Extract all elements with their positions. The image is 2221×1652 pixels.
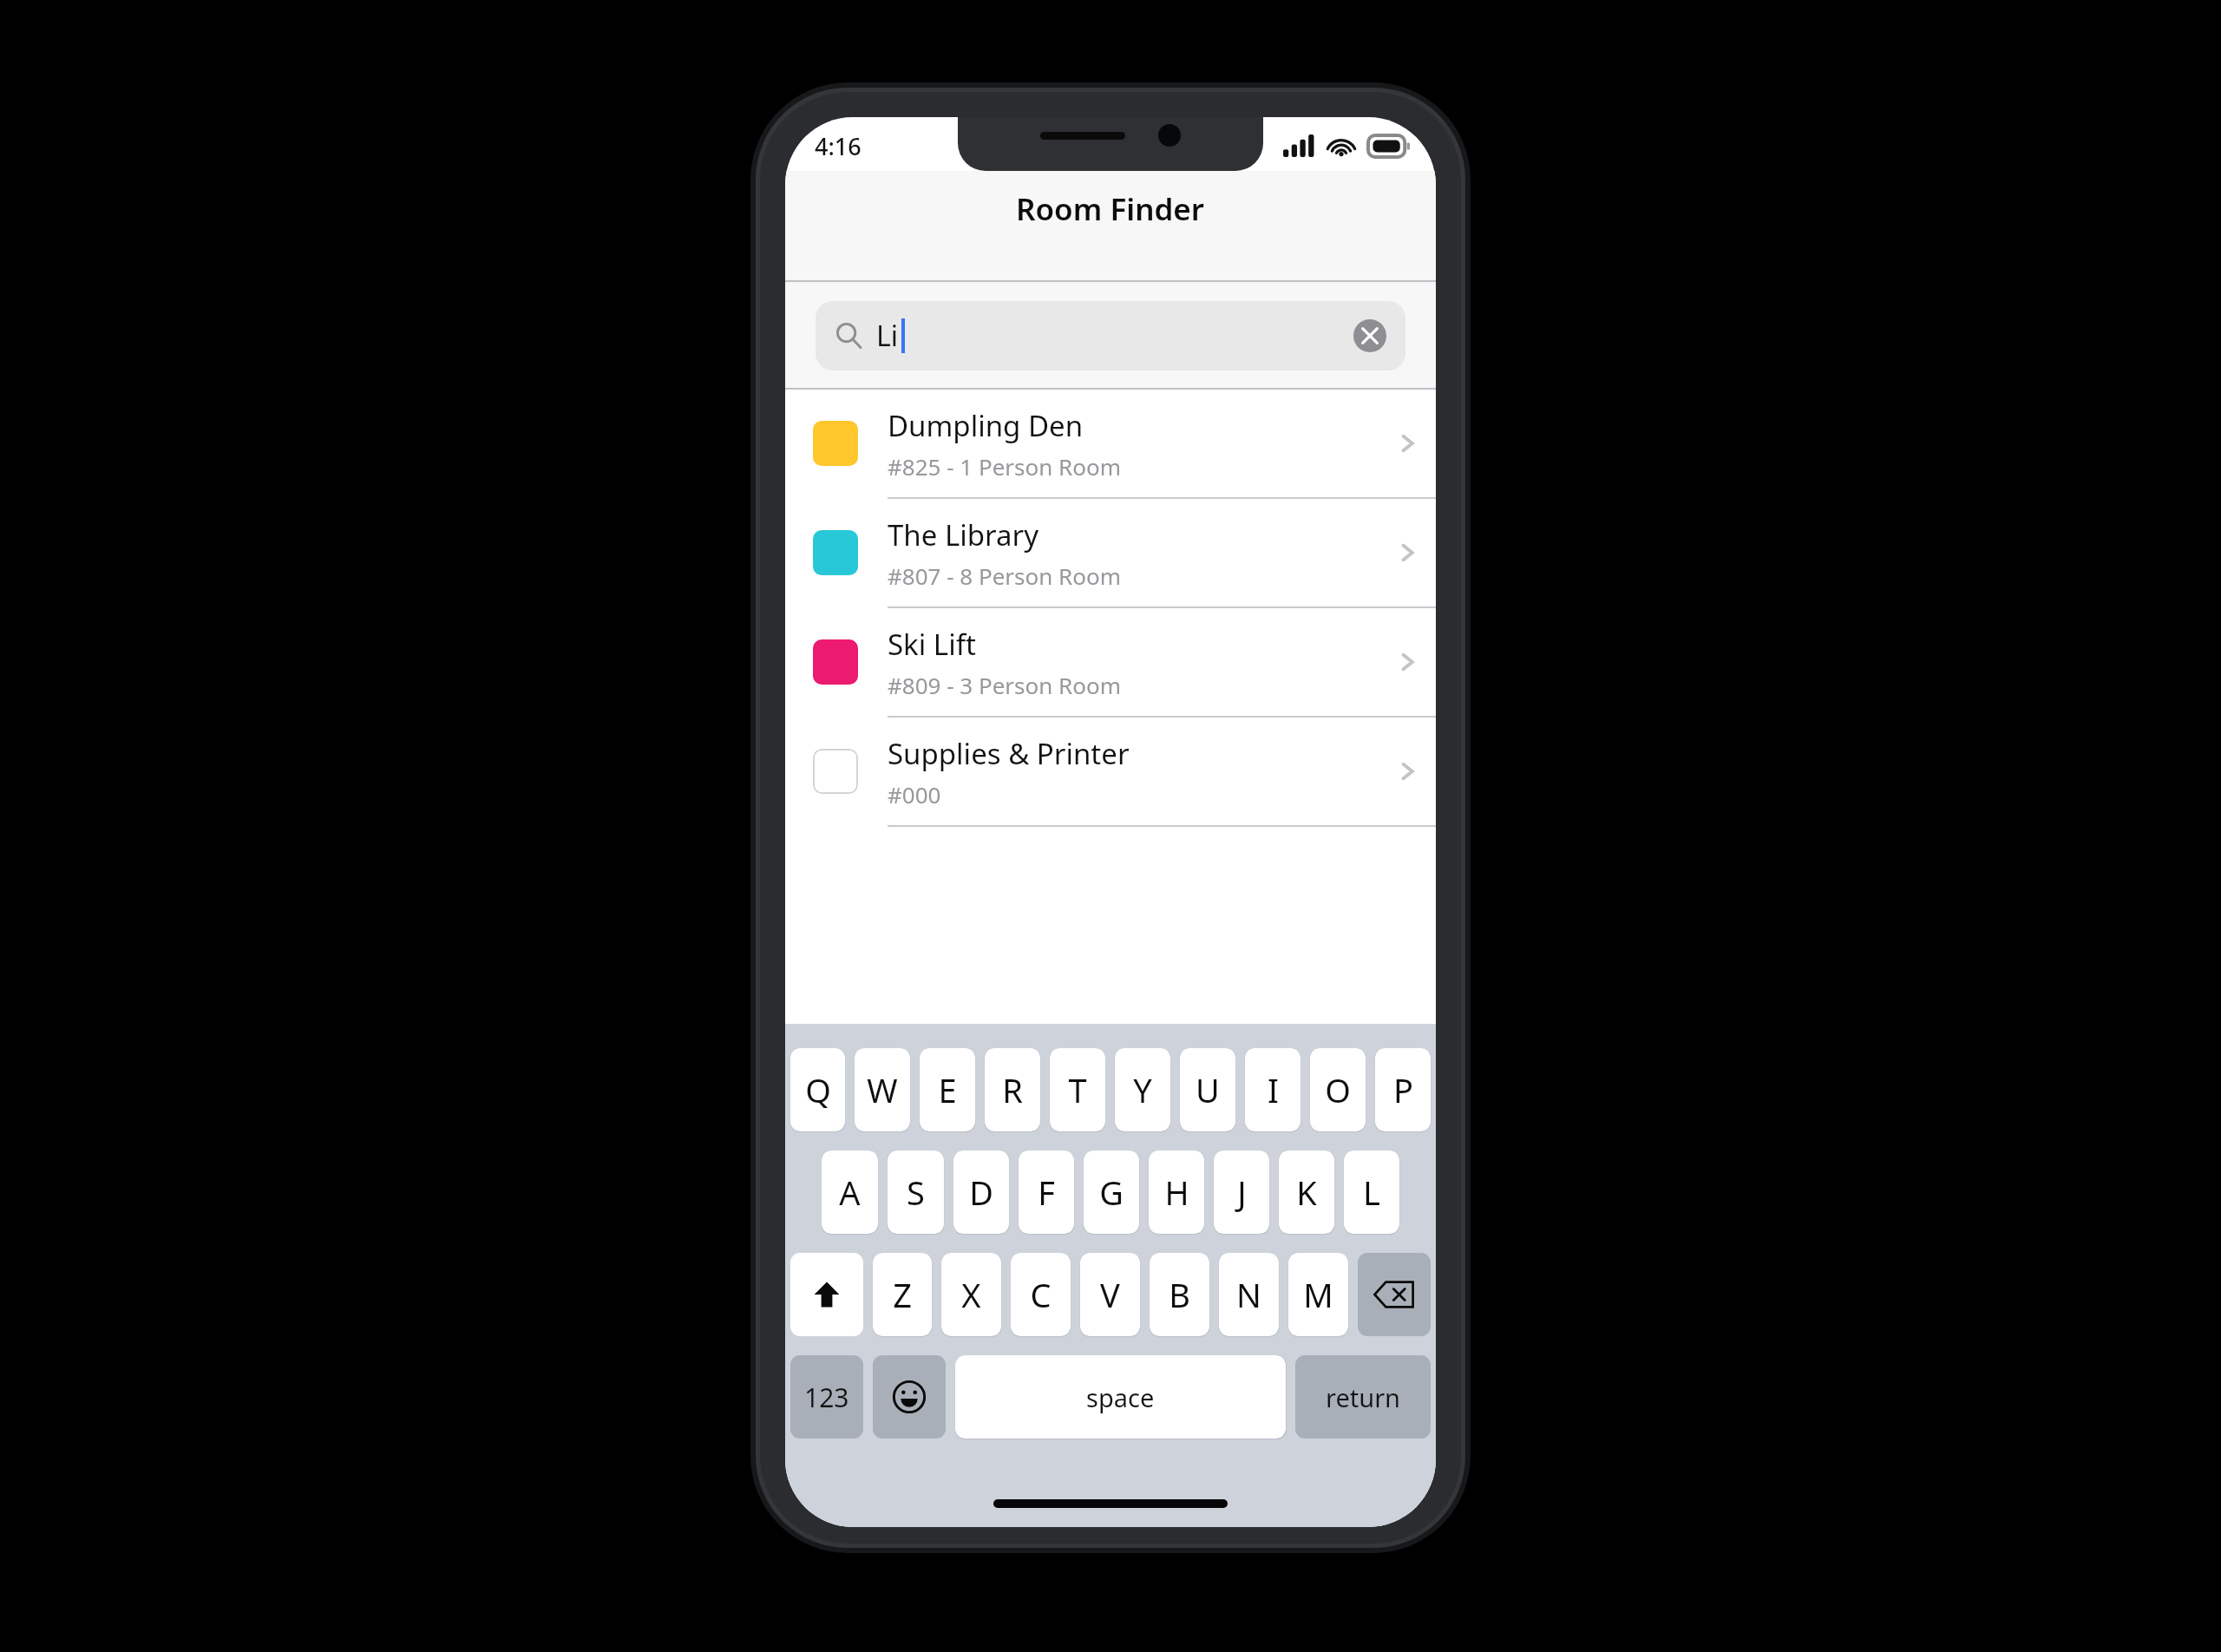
button[interactable]: V bbox=[1080, 1253, 1140, 1336]
button[interactable]: G bbox=[1084, 1150, 1139, 1234]
staticText: W bbox=[867, 1067, 898, 1112]
button[interactable]: B bbox=[1150, 1253, 1209, 1336]
staticText: M bbox=[1303, 1272, 1333, 1317]
staticText: L bbox=[1363, 1170, 1380, 1215]
staticText: #000 bbox=[888, 779, 941, 810]
button[interactable]: Backspace bbox=[1358, 1253, 1431, 1336]
staticText: T bbox=[1068, 1067, 1087, 1112]
button[interactable]: Emoji bbox=[873, 1355, 946, 1439]
button[interactable]: D bbox=[953, 1150, 1009, 1234]
staticText: F bbox=[1038, 1170, 1055, 1215]
staticText: V bbox=[1100, 1272, 1120, 1317]
button[interactable]: R bbox=[985, 1048, 1040, 1131]
button[interactable]: N bbox=[1219, 1253, 1279, 1336]
button[interactable]: W bbox=[855, 1048, 910, 1131]
staticText: The Library bbox=[888, 515, 1038, 554]
staticText: A bbox=[839, 1170, 861, 1215]
staticText: Li bbox=[876, 317, 899, 355]
button[interactable]: E bbox=[920, 1048, 975, 1131]
staticText: S bbox=[907, 1170, 925, 1215]
staticText: E bbox=[938, 1067, 957, 1112]
staticText: K bbox=[1296, 1170, 1317, 1215]
staticText: Room Finder bbox=[1016, 188, 1205, 230]
staticText: B bbox=[1169, 1272, 1190, 1317]
staticText: O bbox=[1325, 1067, 1351, 1112]
staticText: Y bbox=[1133, 1067, 1152, 1112]
button[interactable]: I bbox=[1245, 1048, 1300, 1131]
button[interactable]: O bbox=[1310, 1048, 1366, 1131]
button[interactable]: U bbox=[1180, 1048, 1235, 1131]
staticText: Ski Lift bbox=[888, 625, 976, 664]
button[interactable]: F bbox=[1019, 1150, 1074, 1234]
staticText: J bbox=[1237, 1170, 1247, 1215]
button[interactable]: Q bbox=[790, 1048, 845, 1131]
button[interactable]: C bbox=[1011, 1253, 1071, 1336]
button[interactable]: A bbox=[822, 1150, 878, 1234]
staticText: C bbox=[1030, 1272, 1052, 1317]
staticText: Supplies & Printer bbox=[888, 734, 1130, 773]
button[interactable]: Ski Lift bbox=[785, 608, 1436, 716]
button[interactable]: The Library bbox=[785, 499, 1436, 606]
staticText: 4:16 bbox=[815, 130, 862, 162]
button[interactable]: space bbox=[955, 1355, 1286, 1439]
button[interactable]: M bbox=[1288, 1253, 1348, 1336]
staticText: 123 bbox=[804, 1380, 849, 1415]
button[interactable]: Dumpling Den bbox=[785, 390, 1436, 497]
button[interactable]: H bbox=[1149, 1150, 1204, 1234]
staticText: Q bbox=[805, 1067, 831, 1112]
button[interactable]: 123 bbox=[790, 1355, 863, 1439]
staticText: X bbox=[961, 1272, 981, 1317]
staticText: N bbox=[1236, 1272, 1261, 1317]
staticText: #807 - 8 Person Room bbox=[888, 560, 1122, 591]
button[interactable]: X bbox=[941, 1253, 1001, 1336]
button[interactable]: J bbox=[1214, 1150, 1269, 1234]
staticText: D bbox=[969, 1170, 993, 1215]
button[interactable]: S bbox=[888, 1150, 944, 1234]
button[interactable]: P bbox=[1375, 1048, 1431, 1131]
button[interactable]: Z bbox=[873, 1253, 932, 1336]
staticText: Z bbox=[893, 1272, 912, 1317]
staticText: H bbox=[1164, 1170, 1189, 1215]
button[interactable]: Supplies & Printer bbox=[785, 718, 1436, 825]
staticText: return bbox=[1326, 1380, 1401, 1414]
staticText: G bbox=[1099, 1170, 1124, 1215]
staticText: R bbox=[1002, 1067, 1023, 1112]
staticText: #825 - 1 Person Room bbox=[888, 451, 1122, 482]
button[interactable]: K bbox=[1279, 1150, 1334, 1234]
button[interactable]: Y bbox=[1115, 1048, 1170, 1131]
button[interactable]: Li bbox=[816, 301, 1405, 370]
staticText: Dumpling Den bbox=[888, 406, 1084, 445]
staticText: space bbox=[1086, 1380, 1155, 1414]
staticText: #809 - 3 Person Room bbox=[888, 670, 1122, 700]
staticText: P bbox=[1393, 1067, 1413, 1112]
button[interactable]: L bbox=[1344, 1150, 1399, 1234]
staticText: I bbox=[1268, 1067, 1279, 1112]
staticText: U bbox=[1196, 1067, 1220, 1112]
button[interactable]: Clear search bbox=[1353, 319, 1386, 352]
button[interactable]: T bbox=[1050, 1048, 1105, 1131]
button[interactable]: return bbox=[1295, 1355, 1431, 1439]
button[interactable]: Shift bbox=[790, 1253, 863, 1336]
